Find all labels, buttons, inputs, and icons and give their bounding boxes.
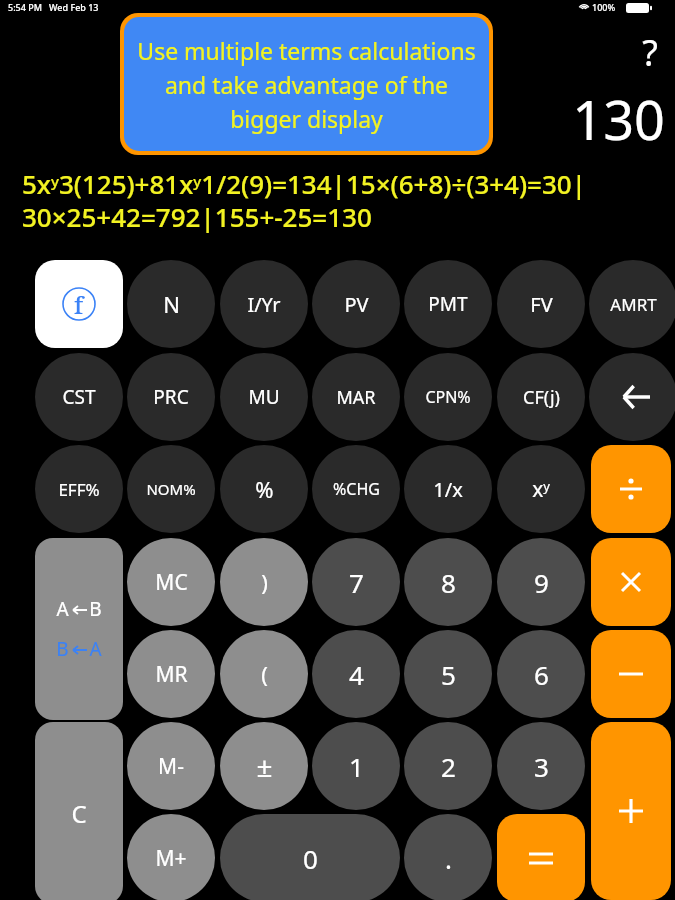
staticText: 100% [592,1,616,13]
button[interactable]: CPN% [404,353,492,441]
button[interactable]: 9 [497,538,585,626]
button[interactable]: Use multiple terms calculations and take… [120,13,493,155]
staticText: M+ [155,844,187,873]
button[interactable]: 2 [404,722,492,810]
staticText: 7 [349,565,364,600]
button[interactable]: Function shift [35,260,123,348]
button[interactable]: PV [312,260,400,348]
staticText: MAR [336,385,376,410]
staticText: 5 [441,657,456,692]
button[interactable]: . [404,814,492,900]
button[interactable]: Plus minus [220,722,308,810]
staticText: 1 [349,749,364,784]
staticText: 5:54 PM Wed Feb 13 [8,1,99,13]
staticText: AMRT [610,293,657,316]
staticText: B [89,596,102,622]
button[interactable]: PMT [404,260,492,348]
button[interactable]: EFF% [35,445,123,533]
button[interactable]: N [127,260,215,348]
button[interactable]: 0 [220,814,400,900]
button[interactable]: 8 [404,538,492,626]
button[interactable]: Multiply [591,538,671,626]
staticText: 6 [534,657,549,692]
button[interactable]: AMRT [589,260,675,348]
staticText: MU [248,384,280,410]
staticText: CF(j) [523,385,560,410]
staticText: xy [532,475,550,504]
staticText: 5xy3(125)+81xy1/2(9)=134|15×(6+8)÷(3+4)=… [22,166,662,235]
staticText: PMT [428,291,468,317]
button[interactable]: CF(j) [497,353,585,441]
staticText: B [56,636,69,662]
button[interactable]: M- [127,722,215,810]
button[interactable]: I/Yr [220,260,308,348]
staticText: MC [155,568,188,597]
button[interactable]: Help [630,28,670,72]
staticText: ? [642,28,658,72]
button[interactable]: PRC [127,353,215,441]
staticText: A [89,636,102,662]
button[interactable]: Subtract [591,630,671,718]
button[interactable]: MU [220,353,308,441]
button[interactable]: 1 [312,722,400,810]
button[interactable]: %CHG [312,445,400,533]
button[interactable]: Backspace [589,353,675,441]
button[interactable]: NOM% [127,445,215,533]
button[interactable]: 5 [404,630,492,718]
button[interactable]: 1/x [404,445,492,533]
staticText: . [445,841,452,876]
staticText: CPN% [425,386,471,408]
staticText: ± [256,747,273,785]
button[interactable]: Divide [591,445,671,533]
staticText: I/Yr [247,291,281,318]
button[interactable]: Swap A and B [35,538,123,720]
staticText: NOM% [146,479,196,499]
staticText: ( [261,659,268,689]
staticText: C [71,797,87,830]
staticText: A [56,596,69,622]
staticText: f [74,288,84,321]
button[interactable]: MAR [312,353,400,441]
staticText: N [163,289,180,319]
button[interactable]: M+ [127,814,215,900]
staticText: M- [158,752,184,781]
staticText: 4 [349,657,364,692]
staticText: PRC [153,384,189,410]
staticText: Use multiple terms calculations and take… [134,35,479,134]
staticText: 9 [534,565,549,600]
button[interactable]: ( [220,630,308,718]
button[interactable]: MR [127,630,215,718]
staticText: MR [155,660,188,689]
staticText: 130 [572,82,665,144]
staticText: 1/x [433,476,463,503]
button[interactable]: 7 [312,538,400,626]
button[interactable]: % [220,445,308,533]
staticText: %CHG [333,478,380,500]
button[interactable]: Equals [497,814,585,900]
staticText: EFF% [58,478,100,501]
button[interactable]: 6 [497,630,585,718]
staticText: % [255,474,274,504]
button[interactable]: 3 [497,722,585,810]
staticText: PV [344,291,369,318]
button[interactable]: ) [220,538,308,626]
button[interactable]: 4 [312,630,400,718]
button[interactable]: xy [497,445,585,533]
button[interactable]: FV [497,260,585,348]
button[interactable]: MC [127,538,215,626]
button[interactable]: C [35,722,123,900]
staticText: ) [261,567,268,597]
staticText: 0 [303,841,318,876]
staticText: 8 [441,565,456,600]
staticText: 3 [534,749,549,784]
button[interactable]: CST [35,353,123,441]
button[interactable]: Add [591,722,671,900]
staticText: 2 [441,749,456,784]
staticText: CST [62,384,96,410]
staticText: FV [530,291,553,318]
